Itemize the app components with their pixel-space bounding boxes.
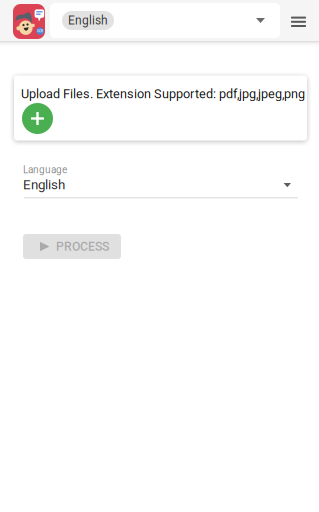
button[interactable]: Choose language	[250, 12, 271, 29]
staticText: OCR	[37, 29, 43, 33]
button[interactable]: Add file	[22, 103, 53, 134]
staticText: Language	[23, 164, 67, 176]
button[interactable]: Menu	[286, 10, 310, 34]
staticText: PROCESS	[56, 239, 109, 254]
button[interactable]: PROCESS	[23, 234, 121, 259]
staticText: Upload Files. Extension Supported: pdf,j…	[21, 86, 305, 101]
button[interactable]: English	[62, 11, 114, 30]
staticText: English	[68, 13, 108, 28]
button[interactable]: Language	[0, 164, 319, 202]
staticText: English	[23, 177, 65, 193]
